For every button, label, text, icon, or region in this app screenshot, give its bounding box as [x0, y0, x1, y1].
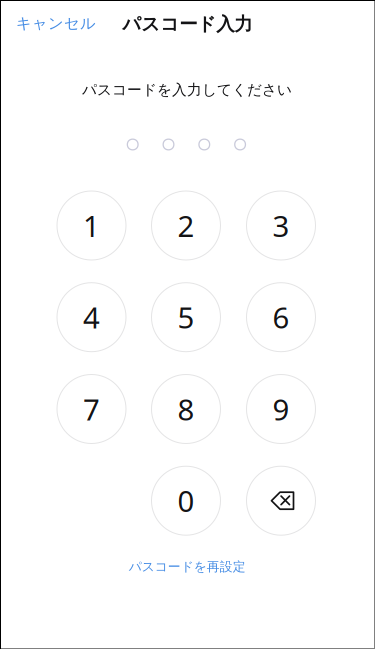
staticText: 2 — [177, 205, 194, 245]
button[interactable]: 0 — [151, 466, 221, 536]
staticText: 4 — [83, 297, 100, 337]
button[interactable]: 1 — [56, 190, 126, 260]
button[interactable]: 5 — [151, 282, 221, 352]
staticText: 1 — [83, 205, 100, 245]
staticText: 7 — [83, 389, 100, 429]
staticText: 0 — [177, 481, 194, 521]
button[interactable]: 削除 — [246, 466, 316, 536]
button[interactable]: 2 — [151, 190, 221, 260]
staticText: 5 — [177, 297, 194, 337]
button[interactable]: 7 — [56, 374, 126, 444]
staticText: パスコード入力 — [122, 12, 252, 36]
button[interactable]: 6 — [246, 282, 316, 352]
button[interactable]: 8 — [151, 374, 221, 444]
staticText: 9 — [272, 389, 289, 429]
button[interactable]: 4 — [56, 282, 126, 352]
staticText: 8 — [177, 389, 194, 429]
button[interactable]: キャンセル — [12, 1, 100, 45]
button[interactable]: 3 — [246, 190, 316, 260]
staticText: パスコードを再設定 — [129, 559, 246, 575]
staticText: キャンセル — [16, 14, 96, 33]
staticText: 6 — [272, 297, 289, 337]
button[interactable]: パスコードを再設定 — [107, 547, 267, 587]
button[interactable]: 9 — [246, 374, 316, 444]
staticText: 3 — [272, 205, 289, 245]
staticText: パスコードを入力してください — [82, 81, 292, 99]
